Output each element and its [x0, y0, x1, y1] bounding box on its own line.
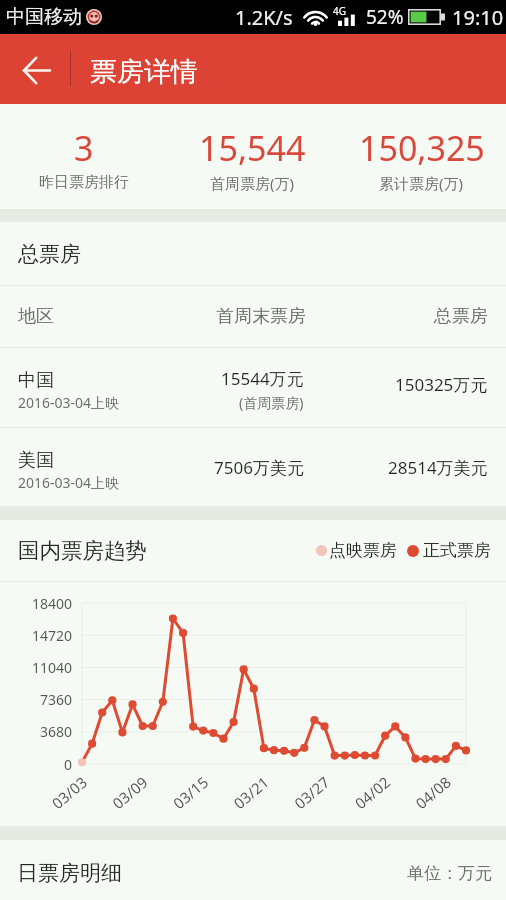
staticText: 票房详情: [90, 55, 198, 89]
staticText: 昨日票房排行: [39, 173, 129, 192]
staticText: 总票房: [18, 241, 81, 267]
staticText: 国内票房趋势: [18, 537, 147, 564]
staticText: 28514万美元: [388, 456, 488, 479]
staticText: 总票房: [434, 305, 488, 328]
staticText: 单位：万元: [407, 863, 492, 884]
staticText: (首周票房): [239, 393, 304, 412]
staticText: 19:10: [452, 4, 504, 31]
staticText: 2016-03-04上映: [18, 473, 120, 492]
staticText: 首周末票房: [216, 305, 306, 328]
staticText: 日票房明细: [17, 860, 122, 886]
staticText: 美国: [18, 449, 54, 472]
staticText: 中国移动: [6, 5, 82, 29]
staticText: 150,325: [359, 125, 485, 171]
staticText: 15,544: [199, 125, 306, 171]
staticText: 点映票房: [329, 540, 397, 561]
staticText: 中国: [18, 369, 54, 392]
staticText: 3: [74, 125, 94, 171]
staticText: 正式票房: [423, 540, 491, 561]
staticText: 地区: [18, 305, 54, 328]
staticText: 15544万元: [221, 367, 304, 390]
staticText: 52%: [366, 4, 404, 30]
staticText: 7506万美元: [214, 456, 304, 479]
button[interactable]: Back: [0, 34, 70, 104]
staticText: 1.2K/s: [235, 4, 293, 31]
staticText: 首周票房(万): [210, 173, 295, 193]
staticText: 累计票房(万): [379, 173, 464, 193]
staticText: 4G: [333, 4, 346, 18]
staticText: 150325万元: [395, 373, 488, 396]
button[interactable]: 中国: [0, 348, 506, 427]
staticText: 2016-03-04上映: [18, 393, 120, 412]
button[interactable]: 美国: [0, 428, 506, 506]
